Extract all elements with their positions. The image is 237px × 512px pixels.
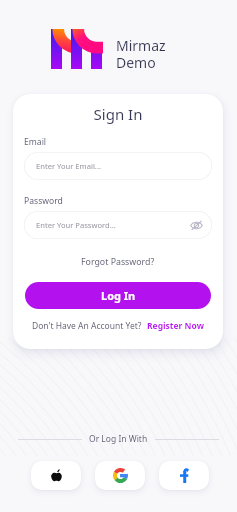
button[interactable]: Register Now xyxy=(147,320,204,332)
button[interactable]: Show password xyxy=(190,219,203,232)
staticText: Email xyxy=(24,136,47,148)
staticText: Forgot Password? xyxy=(81,256,155,268)
button[interactable]: Sign in with Facebook xyxy=(159,461,209,490)
button[interactable]: Log In xyxy=(25,282,211,309)
button[interactable]: Sign in with Apple xyxy=(31,461,81,490)
button[interactable]: Enter Your Password... xyxy=(24,211,212,239)
staticText: Or Log In With xyxy=(89,433,148,445)
staticText: Enter Your Email... xyxy=(36,161,101,171)
staticText: Mirmaz xyxy=(116,36,166,55)
staticText: Don't Have An Account Yet? xyxy=(32,320,142,332)
staticText: Demo xyxy=(116,53,156,72)
staticText: Password xyxy=(24,195,63,207)
button[interactable]: Sign in with Google xyxy=(95,461,145,490)
staticText: Register Now xyxy=(147,320,204,332)
button[interactable]: Enter Your Email... xyxy=(24,152,212,180)
button[interactable]: Forgot Password? xyxy=(13,256,223,268)
staticText: Enter Your Password... xyxy=(36,220,116,230)
staticText: Sign In xyxy=(13,104,223,124)
staticText: Log In xyxy=(101,288,136,303)
